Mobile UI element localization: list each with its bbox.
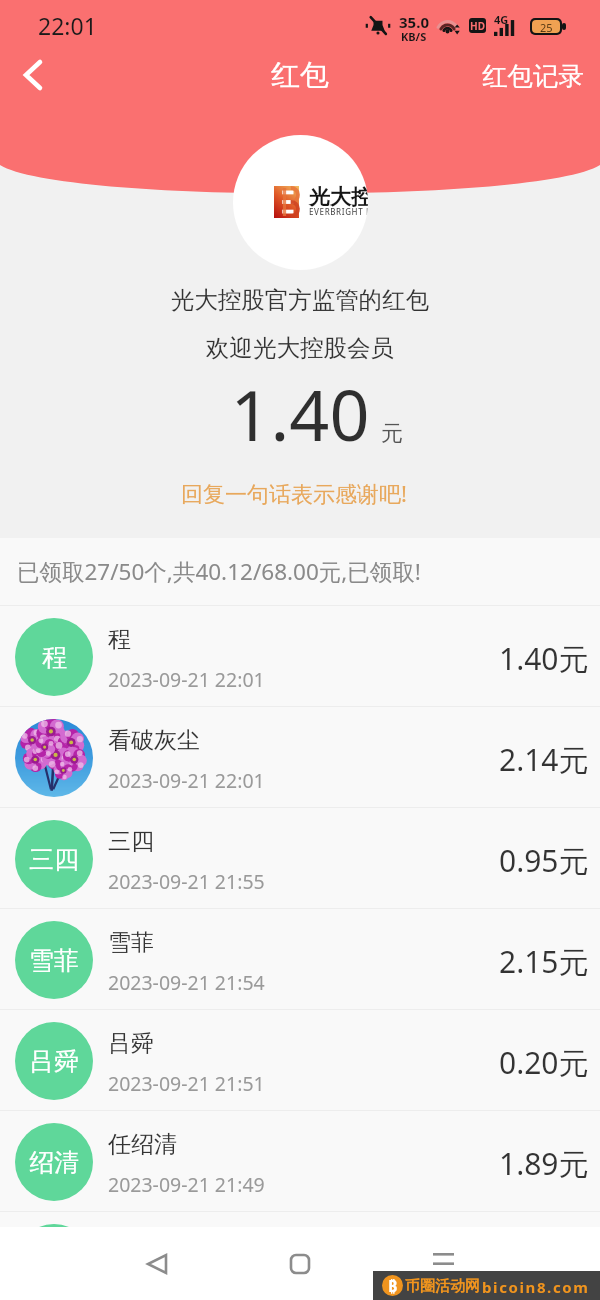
staticText: 欢迎光大控股会员 (0, 333, 600, 363)
staticText: 2023-09-21 21:54 (108, 969, 265, 996)
staticText: EVERBRIGHT LIMITED (309, 206, 368, 217)
staticText: ₿ (388, 1275, 398, 1296)
button[interactable]: 雪菲 (0, 909, 600, 1009)
staticText: 0.95元 (499, 840, 589, 881)
button[interactable]: 绍清 (0, 1111, 600, 1211)
button[interactable]: 红包记录 (482, 63, 600, 95)
button[interactable]: Recents (433, 1253, 454, 1275)
staticText: 看破灰尘 (108, 726, 200, 755)
staticText: 2023-09-21 21:49 (108, 1171, 265, 1198)
button[interactable]: 看破灰尘 (0, 707, 600, 807)
button[interactable]: Back (6, 52, 60, 106)
staticText: 2023-09-21 21:55 (108, 868, 265, 895)
staticText: 元 (381, 420, 403, 448)
staticText: 2023-09-21 22:01 (108, 767, 265, 794)
staticText: 雪菲 (108, 928, 154, 957)
button[interactable]: 三四 (0, 808, 600, 908)
staticText: 2023-09-21 22:01 (108, 666, 265, 693)
button[interactable]: 程 (0, 606, 600, 706)
staticText: 35.0 (399, 12, 429, 32)
button[interactable]: 王斌 (0, 1212, 600, 1227)
staticText: 0.20元 (499, 1042, 589, 1083)
staticText: 程 (108, 625, 131, 654)
staticText: 1.40 (0, 366, 600, 461)
staticText: 2023-09-21 21:51 (108, 1070, 265, 1097)
staticText: 1.40元 (499, 638, 589, 679)
staticText: 绍清 (29, 1147, 79, 1178)
staticText: 2.14元 (499, 739, 589, 780)
staticText: 红包 (271, 57, 329, 94)
staticText: HD (470, 19, 485, 33)
button[interactable]: Home (275, 1239, 325, 1289)
staticText: 三四 (108, 827, 154, 856)
staticText: 4G (494, 12, 509, 27)
staticText: 币圈活动网 (405, 1277, 480, 1296)
staticText: 2.15元 (499, 941, 589, 982)
button[interactable]: Back (131, 1239, 181, 1289)
staticText: 程 (42, 642, 67, 673)
staticText: bicoin8.com (482, 1277, 590, 1297)
staticText: KB/S (401, 29, 427, 44)
staticText: 已领取27/50个,共40.12/68.00元,已领取! (17, 556, 421, 587)
staticText: 光大控股 (309, 184, 368, 210)
staticText: 光大控股官方监管的红包 (0, 285, 600, 315)
staticText: 三四 (29, 844, 79, 875)
staticText: 吕舜 (29, 1046, 79, 1077)
staticText: 任绍清 (108, 1130, 177, 1159)
staticText: 1.89元 (499, 1143, 589, 1184)
staticText: 回复一句话表示感谢吧! (0, 478, 594, 508)
staticText: 25 (540, 20, 553, 33)
staticText: 雪菲 (29, 945, 79, 976)
button[interactable]: 吕舜 (0, 1010, 600, 1110)
staticText: 吕舜 (108, 1029, 154, 1058)
staticText: 红包记录 (482, 60, 584, 92)
staticText: 22:01 (38, 10, 97, 41)
